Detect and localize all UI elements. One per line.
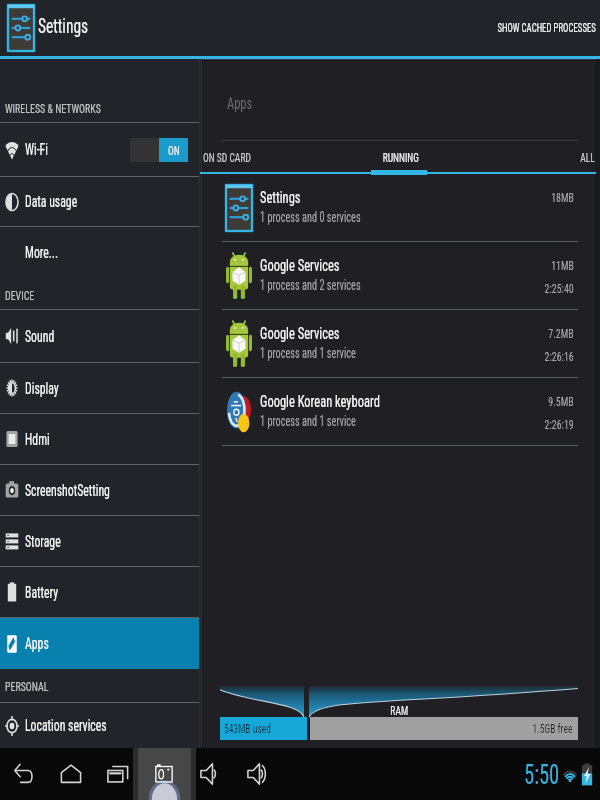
staticText: PERSONAL <box>5 678 49 694</box>
button[interactable]: Data usage <box>0 177 200 226</box>
staticText: 5:50 <box>524 758 560 791</box>
staticText: 18MB <box>551 189 574 205</box>
other: Battery charging <box>579 763 595 786</box>
staticText: 2:25:40 <box>545 280 574 296</box>
button[interactable]: More... <box>0 227 200 278</box>
staticText: RUNNING <box>383 150 419 165</box>
staticText: Storage <box>25 532 61 551</box>
staticText: Apps <box>25 634 49 653</box>
staticText: WIRELESS & NETWORKS <box>5 100 101 116</box>
staticText: SHOW CACHED PROCESSES <box>497 21 596 35</box>
staticText: Location services <box>25 716 107 735</box>
button[interactable]: Google Services <box>200 312 600 377</box>
staticText: 1 process and 0 services <box>260 209 361 225</box>
button[interactable]: Hdmi <box>0 414 200 464</box>
staticText: ALL <box>580 150 595 165</box>
button[interactable]: Screenshot <box>144 748 184 800</box>
button[interactable]: Settings <box>8 5 34 51</box>
button[interactable]: Settings <box>200 176 600 241</box>
staticText: Hdmi <box>25 430 50 449</box>
button[interactable]: Sound <box>0 310 200 362</box>
staticText: Settings <box>38 14 89 39</box>
staticText: Settings <box>260 187 301 207</box>
button[interactable]: SHOW CACHED PROCESSES <box>458 9 600 47</box>
button[interactable]: Location services <box>0 703 200 748</box>
staticText: 7.2MB <box>548 325 574 341</box>
staticText: RAM <box>390 703 409 718</box>
staticText: More... <box>25 243 58 262</box>
button[interactable]: Google Korean keyboard <box>200 380 600 445</box>
button[interactable]: Wi-Fi <box>0 123 200 176</box>
staticText: Google Services <box>260 255 340 275</box>
staticText: Google Korean keyboard <box>260 391 380 411</box>
staticText: 11MB <box>551 257 574 273</box>
button[interactable]: Apps <box>0 618 200 669</box>
staticText: 1.5GB free <box>533 721 573 736</box>
staticText: ScreenshotSetting <box>25 481 110 500</box>
button[interactable]: Volume down <box>191 748 231 800</box>
staticText: DEVICE <box>5 287 34 303</box>
button[interactable]: Volume up <box>238 748 278 800</box>
button[interactable]: ALL <box>467 142 600 172</box>
staticText: Apps <box>227 93 253 113</box>
button[interactable]: Home <box>51 748 91 800</box>
button[interactable]: ON SD CARD <box>200 142 334 172</box>
staticText: 2:26:16 <box>545 348 574 364</box>
staticText: Sound <box>25 327 54 346</box>
button[interactable]: Recent apps <box>98 748 138 800</box>
other: Wi-Fi signal <box>562 764 578 785</box>
staticText: 2:26:19 <box>545 416 574 432</box>
staticText: ON SD CARD <box>203 150 251 165</box>
staticText: Wi-Fi <box>25 140 48 159</box>
staticText: 1 process and 2 services <box>260 277 361 293</box>
staticText: 543MB used <box>224 721 271 736</box>
staticText: Data usage <box>25 192 77 211</box>
staticText: 9.5MB <box>548 393 574 409</box>
button[interactable]: RUNNING <box>334 142 467 172</box>
button[interactable]: Storage <box>0 516 200 566</box>
staticText: ON <box>168 143 180 158</box>
staticText: Google Services <box>260 323 340 343</box>
staticText: Battery <box>25 583 59 602</box>
staticText: 1 process and 1 service <box>260 345 356 361</box>
button[interactable]: Google Services <box>200 244 600 309</box>
button[interactable]: Back <box>3 748 43 800</box>
button[interactable]: Display <box>0 363 200 413</box>
button[interactable]: ScreenshotSetting <box>0 465 200 515</box>
staticText: 1 process and 1 service <box>260 413 356 429</box>
button[interactable]: Wi-Fi toggle <box>130 138 188 162</box>
button[interactable]: Battery <box>0 567 200 617</box>
staticText: Display <box>25 379 59 398</box>
